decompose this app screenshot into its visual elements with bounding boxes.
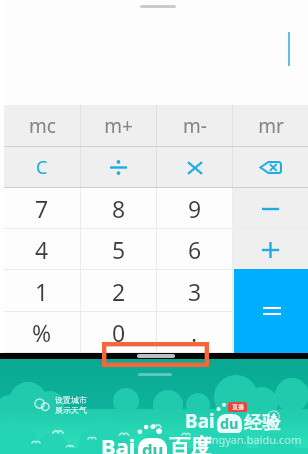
- staticText: jingyan.baidu.com: [206, 432, 302, 447]
- staticText: 1: [35, 276, 49, 307]
- staticText: .: [191, 317, 198, 348]
- button[interactable]: 6: [157, 229, 232, 270]
- button[interactable]: Equals: [234, 269, 308, 353]
- staticText: 4: [35, 234, 49, 265]
- button[interactable]: m+: [81, 105, 156, 147]
- button[interactable]: Multiply: [157, 147, 232, 188]
- staticText: %: [32, 317, 52, 348]
- button[interactable]: [233, 270, 308, 312]
- button[interactable]: 2: [81, 270, 156, 312]
- button[interactable]: %: [4, 312, 80, 353]
- button[interactable]: 1: [4, 270, 80, 312]
- button[interactable]: 3: [157, 270, 232, 312]
- staticText: 直播: [232, 403, 244, 411]
- staticText: mc: [29, 113, 56, 139]
- staticText: 8: [112, 193, 126, 224]
- button[interactable]: 4: [4, 229, 80, 270]
- button[interactable]: 8: [81, 188, 156, 229]
- staticText: 展示天气: [55, 405, 87, 415]
- staticText: 经验: [244, 411, 281, 434]
- staticText: 2: [112, 276, 126, 307]
- staticText: 设置城市: [55, 395, 87, 405]
- staticText: Bai: [101, 431, 136, 454]
- button[interactable]: C: [4, 147, 80, 188]
- button[interactable]: m-: [157, 105, 232, 147]
- staticText: 9: [188, 193, 202, 224]
- button[interactable]: 5: [81, 229, 156, 270]
- button[interactable]: [233, 229, 308, 270]
- staticText: 百度: [169, 434, 212, 454]
- button[interactable]: mc: [4, 105, 80, 147]
- button[interactable]: .: [157, 312, 232, 353]
- staticText: mr: [258, 113, 284, 139]
- staticText: 3: [188, 276, 202, 307]
- staticText: m-: [183, 113, 207, 139]
- button[interactable]: [233, 312, 308, 353]
- staticText: du: [220, 414, 239, 433]
- staticText: 6: [188, 234, 202, 265]
- button[interactable]: mr: [233, 105, 308, 147]
- staticText: Bai: [185, 408, 215, 434]
- staticText: 0: [112, 317, 126, 348]
- button[interactable]: 设置城市: [34, 395, 87, 415]
- staticText: C: [36, 155, 48, 180]
- button[interactable]: Divide: [81, 147, 156, 188]
- button[interactable]: 7: [4, 188, 80, 229]
- staticText: du: [142, 438, 164, 454]
- button[interactable]: [233, 188, 308, 229]
- button[interactable]: Backspace: [233, 147, 308, 188]
- staticText: m+: [104, 113, 133, 139]
- staticText: 5: [112, 234, 126, 265]
- button[interactable]: 0: [81, 312, 156, 353]
- button[interactable]: Add: [267, 410, 280, 423]
- staticText: 7: [35, 193, 49, 224]
- button[interactable]: 9: [157, 188, 232, 229]
